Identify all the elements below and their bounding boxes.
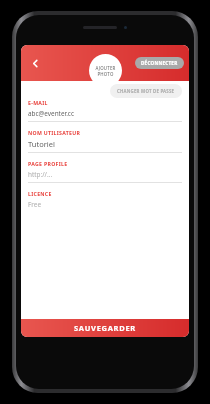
staticText: AJOUTER <box>95 65 116 71</box>
staticText: E-MAIL <box>28 99 48 106</box>
staticText: http://... <box>28 170 53 179</box>
staticText: NOM UTILISATEUR <box>28 129 81 136</box>
button[interactable]: Tutoriel <box>28 139 182 149</box>
button[interactable]: abc@eventer.cc <box>28 109 182 118</box>
staticText: abc@eventer.cc <box>28 109 74 118</box>
staticText: CHANGER MOT DE PASSE <box>117 88 175 94</box>
staticText: SAUVEGARDER <box>74 323 136 333</box>
staticText: PHOTO <box>97 71 114 77</box>
button[interactable]: Ajouter photo <box>89 54 122 87</box>
staticText: Tutoriel <box>28 139 55 149</box>
button[interactable]: Free <box>28 200 182 209</box>
staticText: Free <box>28 200 42 209</box>
button[interactable]: CHANGER MOT DE PASSE <box>110 84 182 98</box>
staticText: DÉCONNECTER <box>141 60 178 66</box>
staticText: PAGE PROFILE <box>28 160 68 167</box>
button[interactable]: Back <box>24 52 46 74</box>
button[interactable]: SAUVEGARDER <box>21 319 189 337</box>
staticText: LICENCE <box>28 190 52 197</box>
button[interactable]: http://... <box>28 170 182 179</box>
button[interactable]: DÉCONNECTER <box>135 57 184 69</box>
